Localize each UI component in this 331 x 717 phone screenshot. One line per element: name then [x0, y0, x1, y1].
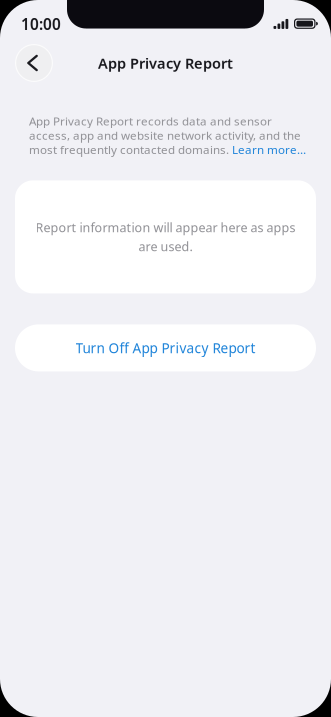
staticText: Turn Off App Privacy Report	[75, 339, 255, 357]
button[interactable]: Learn more…	[232, 142, 306, 157]
button[interactable]: Turn Off App Privacy Report	[15, 324, 316, 371]
button[interactable]: Back	[15, 44, 53, 82]
staticText: 10:00	[21, 13, 61, 34]
staticText: App Privacy Report	[98, 53, 233, 73]
staticText: access, app and website network activity…	[29, 127, 301, 143]
staticText: most frequently contacted domains.	[29, 142, 232, 157]
staticText: Learn more…	[232, 142, 306, 157]
staticText: Report information will appear here as a…	[35, 219, 295, 236]
staticText: are used.	[138, 238, 192, 255]
staticText: App Privacy Report records data and sens…	[29, 113, 272, 129]
